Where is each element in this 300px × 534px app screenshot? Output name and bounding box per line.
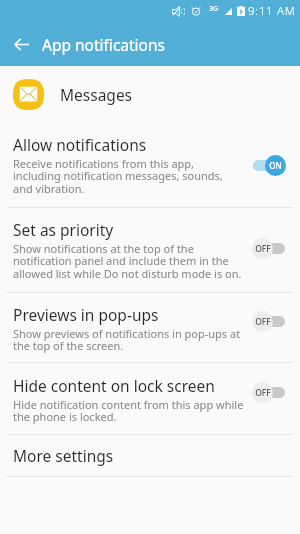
staticText: 3G — [209, 4, 219, 14]
staticText: OFF — [255, 243, 271, 255]
button[interactable]: Previews in pop-ups — [0, 298, 300, 362]
staticText: OFF — [255, 387, 271, 399]
staticText: the phone is locked. — [13, 409, 117, 424]
staticText: the top of the screen. — [13, 338, 124, 353]
staticText: including notification messages, sounds, — [13, 168, 223, 183]
staticText: 9:11 AM — [248, 3, 296, 19]
staticText: notification panel and include them in t… — [13, 253, 229, 268]
staticText: Allow notifications — [13, 134, 147, 155]
button[interactable]: Turn on — [252, 238, 286, 259]
staticText: Hide content on lock screen — [13, 375, 215, 396]
staticText: ON — [269, 160, 282, 171]
button[interactable]: Turn off — [252, 155, 286, 176]
staticText: More settings — [13, 445, 114, 466]
button[interactable]: Turn on — [252, 311, 286, 332]
staticText: App notifications — [42, 34, 165, 55]
button[interactable]: More settings — [0, 435, 300, 476]
staticText: and vibration. — [13, 181, 85, 196]
staticText: Show previews of notifications in pop-up… — [13, 326, 241, 341]
staticText: Set as priority — [13, 219, 114, 240]
staticText: Messages — [60, 84, 133, 105]
staticText: Previews in pop-ups — [13, 304, 159, 325]
staticText: allowed list while Do not disturb mode i… — [13, 266, 242, 281]
staticText: Hide notification content from this app … — [13, 397, 244, 412]
staticText: Show notifications at the top of the — [13, 241, 194, 256]
button[interactable]: Messages — [0, 66, 300, 122]
button[interactable]: Navigate up — [0, 22, 42, 66]
button[interactable]: Turn on — [252, 382, 286, 403]
button[interactable]: Set as priority — [0, 213, 300, 292]
staticText: Receive notifications from this app, — [13, 156, 195, 171]
button[interactable]: Hide content on lock screen — [0, 369, 300, 434]
staticText: OFF — [255, 316, 271, 328]
button[interactable]: Allow notifications — [0, 128, 300, 207]
